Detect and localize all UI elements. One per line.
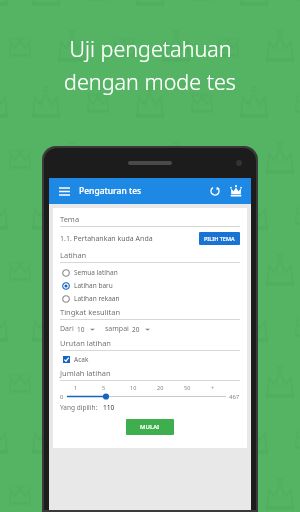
button[interactable]: Latihan rekaan	[60, 292, 240, 305]
button[interactable]	[67, 392, 226, 401]
button[interactable]: Latihan baru	[60, 279, 240, 292]
button[interactable]: MULAI	[126, 419, 174, 435]
staticText: Yang dipilih:	[60, 403, 98, 412]
staticText: dengan mode tes	[64, 67, 236, 96]
staticText: Acak	[74, 355, 89, 364]
staticText: sampai	[105, 324, 129, 334]
button[interactable]: Crown	[228, 183, 244, 199]
staticText: Latihan rekaan	[74, 294, 120, 303]
staticText: Dari	[60, 324, 74, 334]
button[interactable]: Menu	[56, 183, 72, 199]
staticText: 0	[60, 393, 64, 401]
staticText: Jumlah latihan	[60, 368, 111, 378]
staticText: 10	[130, 384, 157, 391]
staticText: 110	[103, 403, 115, 412]
staticText: +	[211, 384, 238, 391]
staticText: Semua latihan	[74, 268, 118, 277]
button[interactable]: 20	[132, 325, 150, 334]
button[interactable]: Refresh	[207, 183, 223, 199]
staticText: 10	[77, 325, 85, 334]
staticText: MULAI	[140, 423, 160, 431]
staticText: Uji pengetahuan	[69, 34, 232, 63]
staticText: 1.1. Pertahankan kuda Anda	[60, 234, 153, 244]
staticText: Pengaturan tes	[79, 185, 142, 197]
staticText: 20	[157, 384, 184, 391]
button[interactable]: 10	[77, 325, 95, 334]
staticText: Tema	[60, 214, 80, 224]
staticText: Tingkat kesulitan	[60, 307, 121, 317]
staticText: 467	[229, 393, 240, 401]
staticText: Urutan latihan	[60, 338, 111, 348]
staticText: PILIH TEMA	[204, 235, 235, 242]
staticText: 1	[74, 384, 102, 391]
button[interactable]: Semua latihan	[60, 266, 240, 279]
staticText: 20	[132, 325, 140, 334]
button[interactable]: PILIH TEMA	[199, 232, 240, 245]
staticText: Latihan	[60, 250, 87, 260]
staticText: Latihan baru	[74, 281, 113, 290]
staticText: 50	[184, 384, 211, 391]
staticText: 5	[102, 384, 130, 391]
button[interactable]: Acak	[60, 355, 89, 364]
